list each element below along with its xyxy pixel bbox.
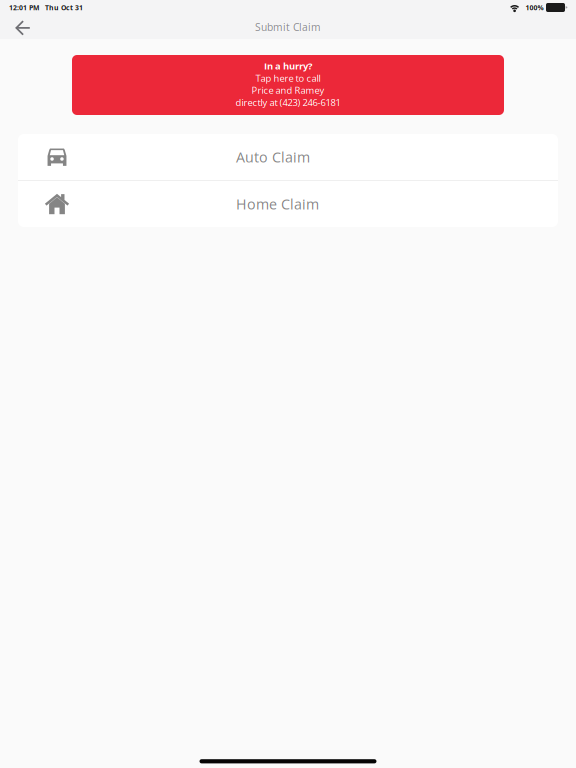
button[interactable]: Home Claim [18,181,558,227]
button[interactable]: Back [8,15,38,38]
button[interactable]: In a hurry? [72,55,504,115]
staticText: Home Claim [236,194,319,214]
staticText: 12:01 PM [9,3,39,12]
staticText: directly at (423) 246-6181 [235,96,340,109]
staticText: Tap here to call [255,72,320,84]
button[interactable]: Auto Claim [18,134,558,180]
staticText: Submit Claim [255,20,321,34]
staticText: Thu Oct 31 [45,3,83,12]
staticText: Price and Ramey [251,84,324,97]
staticText: 100% [525,3,543,12]
staticText: In a hurry? [264,59,312,72]
staticText: Auto Claim [236,147,310,167]
